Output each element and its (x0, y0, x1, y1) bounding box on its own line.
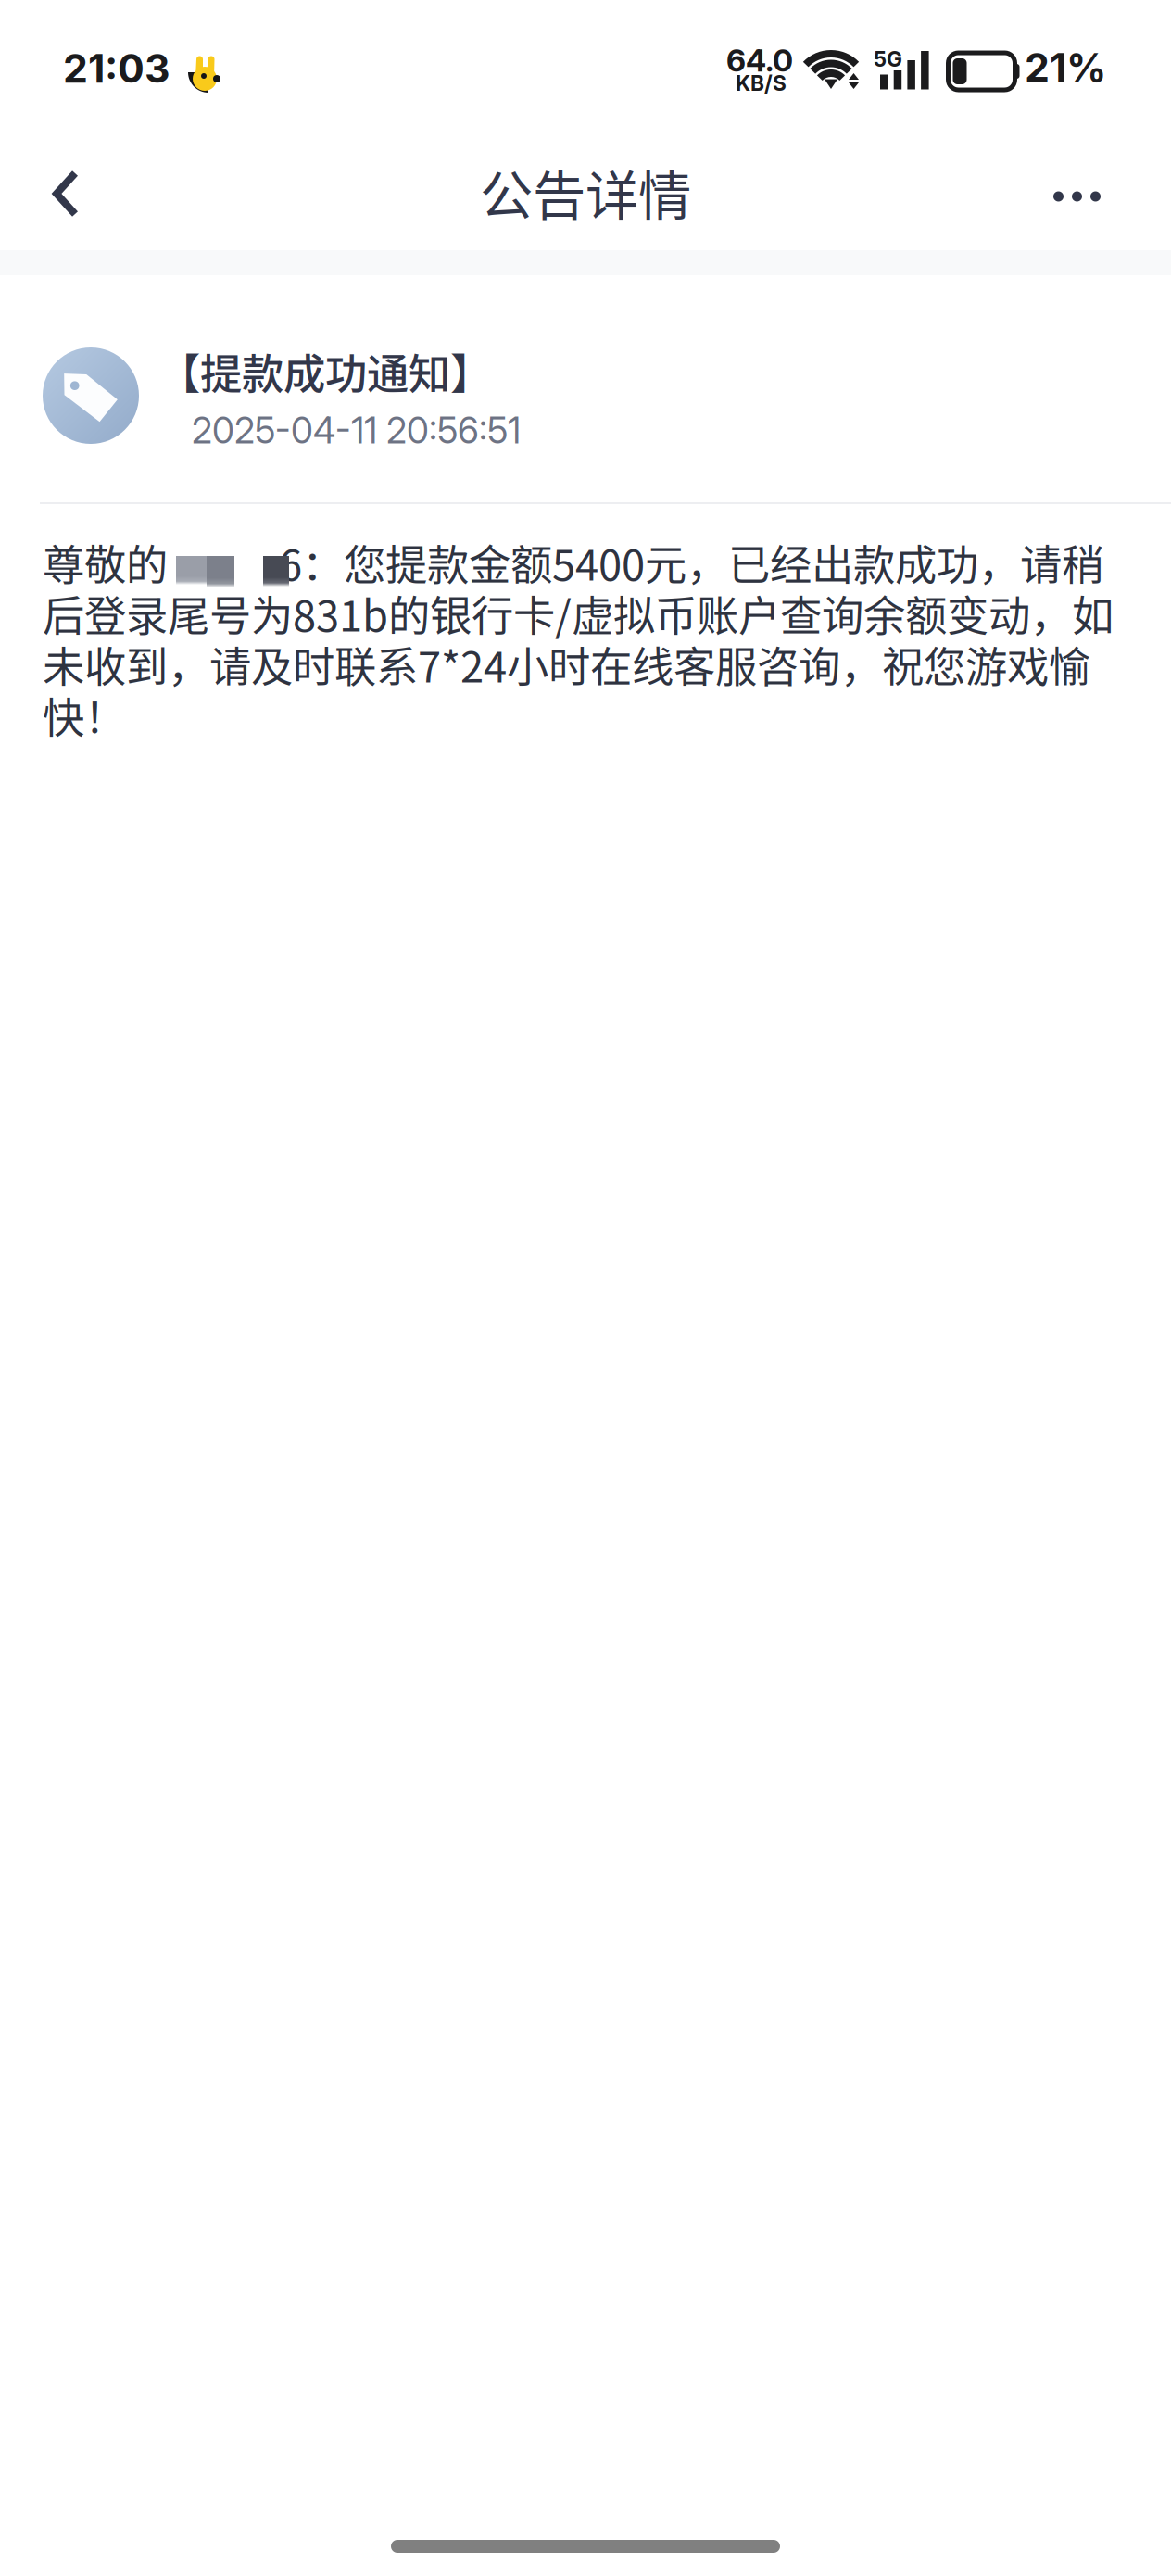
staticText: 后登录尾号为831b的银行卡/虚拟币账户查询余额变动，如 (43, 587, 1114, 638)
staticText: KB/S (736, 70, 787, 96)
staticText: 尊敬的 6：您提款金额5400元，已经出款成功，请稍 (43, 537, 1103, 587)
staticText: 公告详情 (480, 153, 691, 230)
staticText: 快！ (43, 689, 126, 740)
staticText: 未收到，请及时联系7*24小时在线客服咨询，祝您游戏愉 (43, 638, 1090, 689)
staticText: 64.0 (726, 42, 793, 79)
staticText: 21:03 (63, 44, 170, 92)
staticText: 2025-04-11 20:56:51 (192, 409, 521, 452)
staticText: 【提款成功通知】 (158, 341, 492, 402)
staticText: 21% (1025, 44, 1106, 91)
button[interactable]: 更多 (1044, 128, 1143, 240)
staticText: 5G (874, 46, 902, 72)
button[interactable]: 返回 (28, 128, 104, 241)
